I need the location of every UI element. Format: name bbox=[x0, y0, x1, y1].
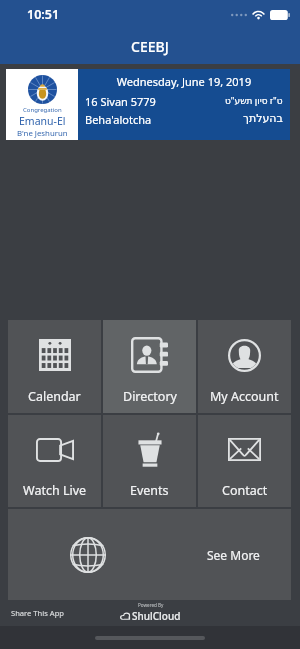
button[interactable]: Watch Live bbox=[8, 415, 101, 507]
staticText: Congregation bbox=[23, 106, 62, 114]
staticText: 16 Sivan 5779 bbox=[85, 94, 156, 109]
staticText: Events bbox=[130, 482, 169, 499]
staticText: Beha'alotcha bbox=[85, 112, 152, 127]
staticText: ShulCloud bbox=[132, 609, 181, 623]
button[interactable]: Calendar bbox=[8, 320, 101, 413]
staticText: B'ne Jeshurun bbox=[17, 128, 68, 139]
staticText: Emanu-El bbox=[19, 114, 66, 128]
staticText: בהעלתך bbox=[243, 112, 283, 125]
staticText: My Account bbox=[210, 388, 279, 405]
button[interactable]: See More bbox=[8, 509, 291, 600]
staticText: 10:51 bbox=[27, 6, 60, 23]
button[interactable]: Events bbox=[103, 415, 196, 507]
staticText: Directory bbox=[123, 388, 177, 405]
staticText: Calendar bbox=[28, 388, 81, 405]
staticText: Powered By bbox=[138, 602, 164, 608]
staticText: Wednesday, June 19, 2019 bbox=[85, 74, 283, 89]
button[interactable]: Share This App bbox=[11, 608, 65, 618]
button[interactable]: Directory bbox=[103, 320, 196, 413]
staticText: CEEBJ bbox=[131, 37, 169, 56]
staticText: Watch Live bbox=[23, 482, 87, 499]
staticText: ט"ז סיון תשע"ט bbox=[225, 94, 283, 106]
staticText: See More bbox=[207, 547, 260, 563]
staticText: Contact bbox=[222, 482, 268, 499]
button[interactable]: Contact bbox=[198, 415, 291, 507]
button[interactable]: My Account bbox=[198, 320, 291, 413]
